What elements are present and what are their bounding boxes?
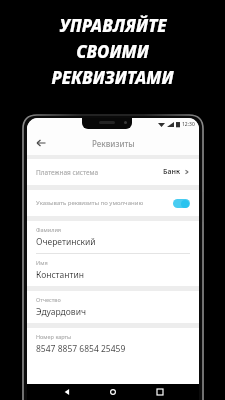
button[interactable]: Домой [106,385,120,399]
staticText: 12:30 [182,121,195,128]
staticText: Указывать реквизиты по умолчанию [36,199,144,207]
staticText: РЕКВИЗИТАМИ [51,66,174,89]
button[interactable]: Имя [27,254,199,286]
staticText: Платежная система [36,168,99,177]
staticText: Реквизиты [92,138,135,149]
button[interactable]: Последние [153,385,167,399]
staticText: 8547 8857 6854 25459 [36,343,126,355]
button[interactable]: Фамилия [27,221,199,254]
button[interactable]: Указывать реквизиты по умолчанию [27,190,199,216]
staticText: Эдуардович [36,306,86,318]
staticText: Константин [36,269,84,281]
staticText: УПРАВЛЯЙТЕ [59,14,167,37]
staticText: Очеретинский [36,236,96,248]
staticText: Отчество [36,296,61,303]
button[interactable]: Отчество [27,291,199,323]
staticText: Имя [36,259,48,266]
staticText: Фамилия [36,226,62,233]
button[interactable]: Номер карты [27,328,199,360]
button[interactable]: Назад [31,133,51,153]
button[interactable]: Платежная система [27,159,199,185]
staticText: Банк [163,167,181,177]
staticText: СВОИМИ [76,40,149,63]
button[interactable]: Назад [60,385,74,399]
staticText: Номер карты [36,333,72,340]
